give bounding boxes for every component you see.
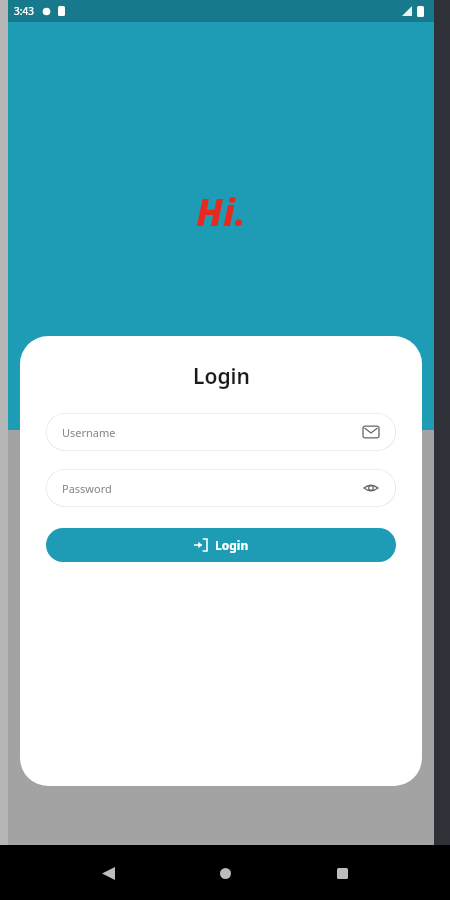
button[interactable]: Home	[207, 855, 243, 891]
staticText: Password	[62, 481, 112, 496]
staticText: Login	[215, 537, 249, 553]
button[interactable]: Login	[46, 528, 396, 562]
button[interactable]: Show password	[362, 479, 380, 497]
button[interactable]: Username	[46, 413, 396, 451]
button[interactable]: Back	[90, 855, 126, 891]
staticText: Username	[62, 425, 116, 440]
button[interactable]: Recent apps	[324, 855, 360, 891]
button[interactable]: Password	[46, 469, 396, 507]
staticText: Login	[193, 362, 250, 391]
staticText: Hi.	[196, 185, 246, 237]
button[interactable]: Email	[362, 423, 380, 441]
staticText: 3:43	[14, 4, 34, 18]
